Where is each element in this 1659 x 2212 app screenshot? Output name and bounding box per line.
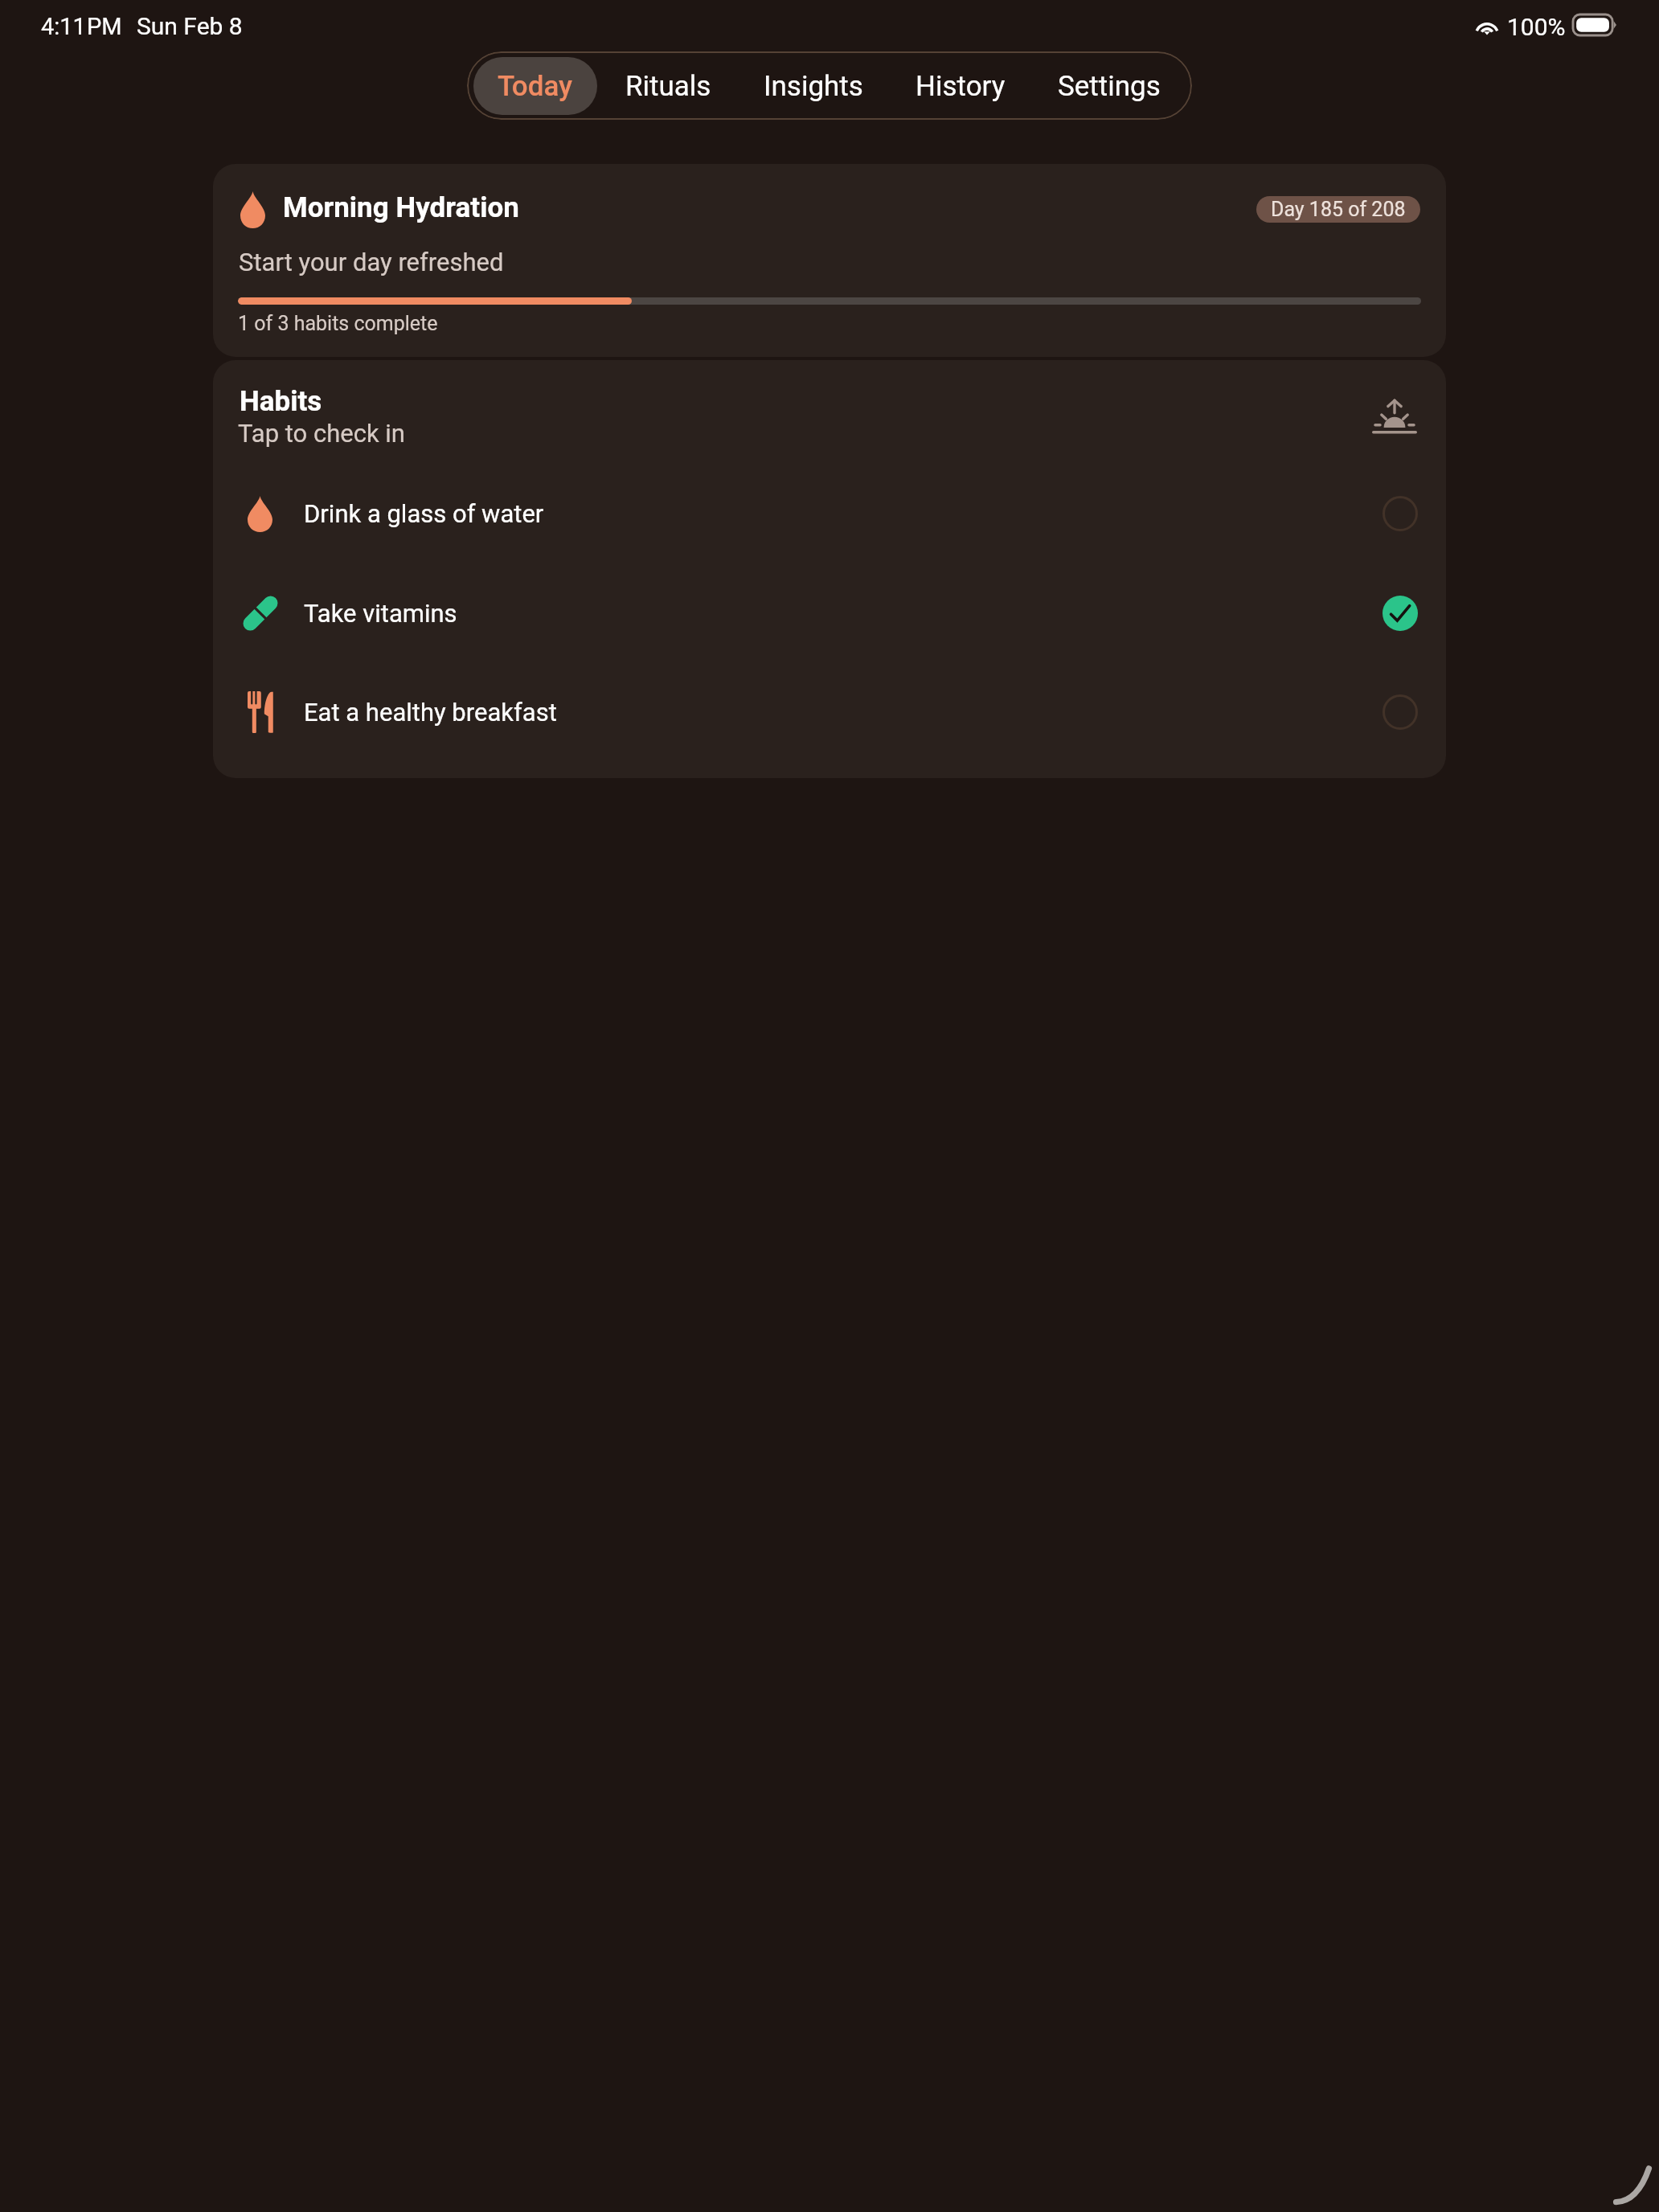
staticText: Take vitamins <box>304 599 457 628</box>
button[interactable]: Eat a healthy breakfast <box>213 663 1446 761</box>
staticText: Tap to check in <box>238 419 405 448</box>
staticText: Start your day refreshed <box>239 248 504 276</box>
staticText: PM <box>87 13 122 40</box>
button[interactable]: Drink a glass of water <box>213 465 1446 563</box>
button[interactable]: Today <box>473 57 597 115</box>
button[interactable]: Rituals <box>601 57 735 115</box>
staticText: Habits <box>240 385 322 418</box>
staticText: 1 of 3 habits complete <box>238 312 438 335</box>
staticText: Eat a healthy breakfast <box>304 698 557 727</box>
button[interactable]: History <box>891 57 1030 115</box>
staticText: 4:11 <box>41 13 86 40</box>
staticText: Drink a glass of water <box>304 499 544 528</box>
staticText: 100% <box>1507 13 1566 41</box>
staticText: Settings <box>1058 70 1161 103</box>
button[interactable]: Morning Hydration <box>213 164 1446 357</box>
button[interactable]: Settings <box>1034 57 1185 115</box>
button[interactable]: Insights <box>739 57 887 115</box>
staticText: Day 185 of 208 <box>1271 198 1406 221</box>
other: Sunrise <box>1372 397 1417 435</box>
staticText: Rituals <box>625 70 711 103</box>
button[interactable]: Take vitamins <box>213 564 1446 662</box>
staticText: Today <box>498 70 573 103</box>
staticText: Sun Feb 8 <box>137 12 243 40</box>
staticText: History <box>916 70 1006 103</box>
staticText: Insights <box>764 70 863 103</box>
staticText: Morning Hydration <box>283 191 519 224</box>
